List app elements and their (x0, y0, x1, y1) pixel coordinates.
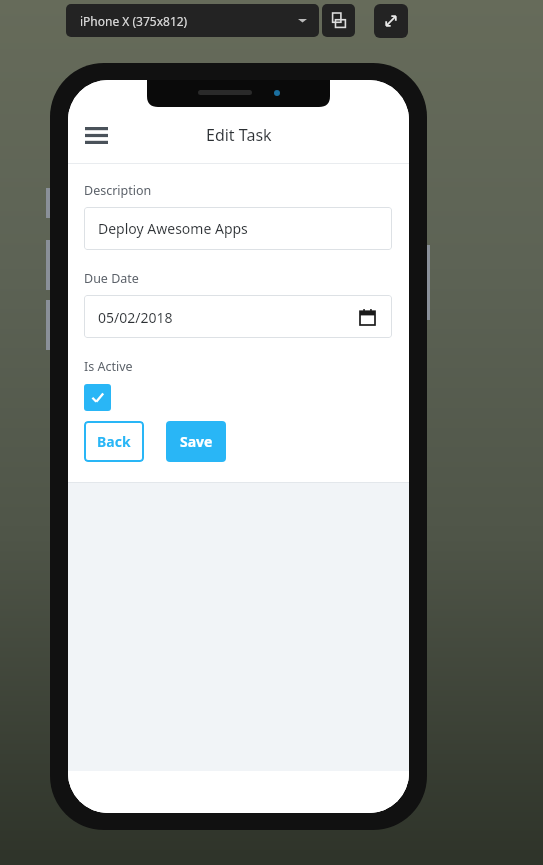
button[interactable]: Menu (76, 115, 116, 155)
staticText: Description (84, 182, 152, 199)
button[interactable]: iPhone X (375x812) (66, 4, 319, 37)
button[interactable]: Expand (374, 4, 408, 38)
staticText: iPhone X (375x812) (80, 13, 188, 29)
staticText: Back (97, 432, 131, 451)
staticText: Due Date (84, 270, 139, 287)
button[interactable]: Take screenshot (322, 4, 355, 37)
button[interactable]: Pick date (356, 306, 378, 328)
button[interactable]: Is Active checkbox, checked (84, 384, 111, 411)
staticText: Edit Task (206, 124, 272, 146)
button[interactable]: 05/02/2018 (84, 295, 392, 338)
button[interactable]: Deploy Awesome Apps (84, 207, 392, 250)
staticText: 05/02/2018 (98, 308, 356, 327)
button[interactable]: Back (84, 421, 144, 462)
staticText: Deploy Awesome Apps (98, 219, 248, 238)
staticText: Is Active (84, 358, 133, 375)
button[interactable]: Save (166, 421, 226, 462)
staticText: Save (180, 432, 213, 451)
